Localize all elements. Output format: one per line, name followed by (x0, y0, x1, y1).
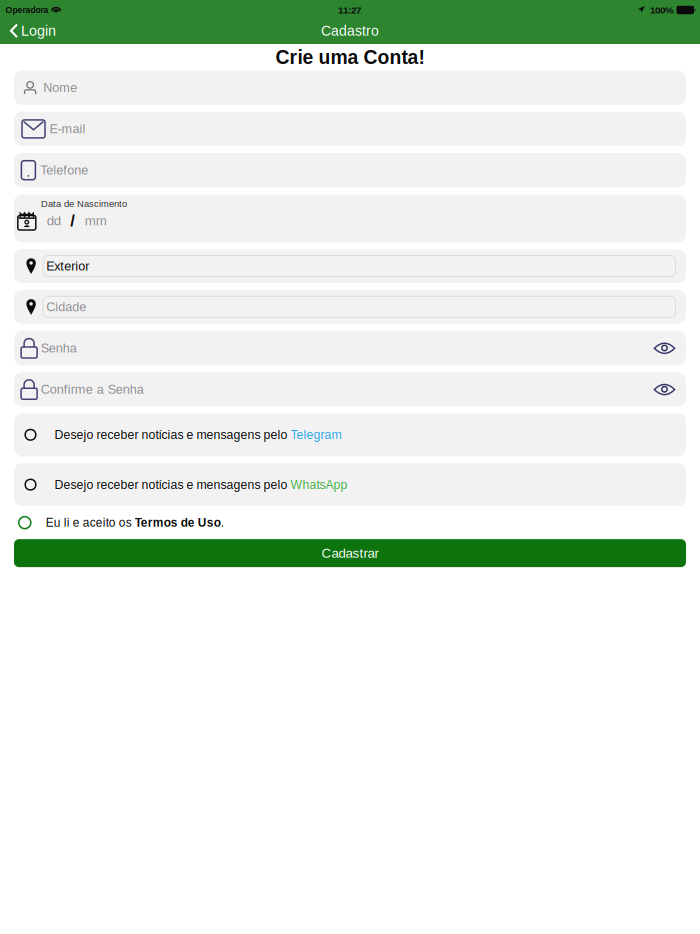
button[interactable]: Login (0, 20, 64, 44)
staticText: Cadastrar (321, 546, 378, 561)
staticText: Crie uma Conta! (275, 46, 424, 68)
staticText: Desejo receber notícias e mensagens pelo (54, 478, 290, 491)
staticText: Data de Nascimento (41, 198, 127, 209)
button[interactable]: Mostrar senha (647, 373, 681, 405)
button[interactable]: Desejo receber notícias e mensagens pelo (14, 463, 686, 506)
staticText: Telegram (290, 428, 341, 442)
staticText: dd (47, 213, 61, 228)
staticText: E-mail (50, 122, 86, 136)
staticText: / (70, 211, 75, 230)
button[interactable]: Desejo receber notícias e mensagens pelo (14, 413, 686, 456)
staticText: 100% (650, 4, 674, 15)
staticText: Cidade (46, 300, 86, 314)
staticText: . (221, 516, 224, 529)
staticText: Termos de Uso (135, 516, 221, 529)
staticText: mm (85, 213, 107, 228)
staticText: Nome (43, 81, 77, 95)
button[interactable]: Eu li e aceito os (0, 506, 700, 539)
staticText: Eu li e aceito os (46, 516, 135, 529)
staticText: WhatsApp (290, 478, 347, 491)
staticText: Senha (41, 341, 77, 355)
staticText: Exterior (46, 259, 89, 273)
staticText: 11:27 (338, 4, 361, 15)
staticText: Desejo receber notícias e mensagens pelo (54, 428, 290, 442)
button[interactable]: Cadastrar (14, 539, 686, 567)
staticText: Confirme a Senha (41, 382, 144, 396)
staticText: Cadastro (321, 23, 379, 39)
staticText: Telefone (40, 163, 88, 177)
button[interactable]: Mostrar senha (647, 332, 681, 364)
staticText: Operadora (5, 5, 48, 15)
staticText: Login (21, 23, 56, 39)
